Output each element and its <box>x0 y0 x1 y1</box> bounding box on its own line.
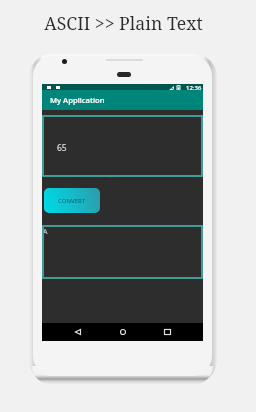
button[interactable]: 65 <box>42 115 203 177</box>
staticText: My Application <box>50 95 105 105</box>
button[interactable]: Back <box>66 325 89 339</box>
button[interactable]: Home <box>111 325 134 339</box>
staticText: 12:36 <box>186 84 202 90</box>
button[interactable]: Recents <box>156 325 179 339</box>
staticText: CONVERT <box>58 197 86 205</box>
staticText: 65 <box>57 142 67 154</box>
button[interactable]: A <box>42 225 203 279</box>
staticText: ASCII >> Plain Text <box>44 11 203 35</box>
button[interactable]: CONVERT <box>44 188 100 213</box>
staticText: A <box>43 227 48 237</box>
